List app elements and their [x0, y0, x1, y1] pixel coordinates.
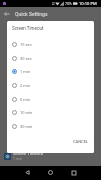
staticText: 15 sec — [20, 42, 32, 47]
button[interactable]: 1 min — [7, 64, 94, 78]
button[interactable]: Screen Timeout — [0, 148, 101, 164]
button[interactable]: Back — [0, 7, 14, 21]
staticText: 30 min — [20, 124, 33, 129]
staticText: 10 min — [20, 110, 33, 115]
staticText: 1 min — [20, 69, 30, 74]
button[interactable]: 30 min — [7, 119, 94, 133]
staticText: Screen Timeout — [13, 151, 44, 156]
button[interactable]: Home — [45, 167, 56, 178]
button[interactable]: 5 min — [7, 92, 94, 106]
button[interactable]: 10 min — [7, 105, 94, 119]
staticText: Quick Settings — [15, 11, 48, 17]
button[interactable]: 2 min — [7, 78, 94, 92]
button[interactable]: 30 sec — [7, 51, 94, 65]
staticText: 30 sec — [20, 56, 32, 61]
staticText: CANCEL — [73, 139, 89, 144]
staticText: 5 min — [20, 97, 30, 102]
button[interactable]: 15 sec — [7, 37, 94, 51]
staticText: 2 min — [20, 83, 30, 88]
staticText: Screen Timeout — [12, 26, 44, 31]
staticText: 1 min — [13, 157, 22, 161]
staticText: 70% — [65, 2, 72, 6]
button[interactable]: Back — [22, 167, 33, 178]
staticText: 10:10 PM — [79, 1, 97, 6]
button[interactable]: CANCEL — [71, 136, 91, 147]
button[interactable]: Recents — [68, 167, 79, 178]
